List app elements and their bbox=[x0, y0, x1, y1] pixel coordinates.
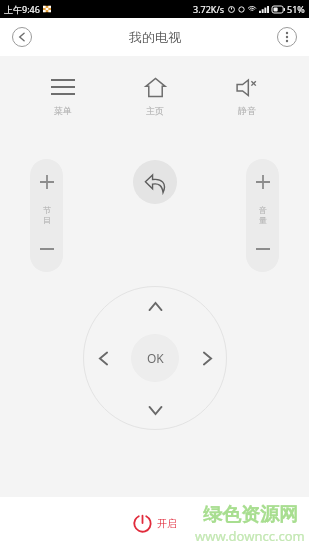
staticText: 量 bbox=[259, 215, 267, 225]
button[interactable]: Right bbox=[187, 338, 227, 378]
staticText: 音 bbox=[259, 205, 267, 215]
button[interactable]: Increase bbox=[246, 159, 279, 205]
button[interactable]: Increase bbox=[30, 159, 63, 205]
button[interactable]: Left bbox=[83, 338, 123, 378]
button[interactable]: Down bbox=[135, 390, 175, 430]
button[interactable]: 主页 bbox=[109, 70, 201, 120]
staticText: 51% bbox=[287, 3, 305, 15]
button[interactable]: Decrease bbox=[246, 225, 279, 272]
button[interactable]: 静音 bbox=[201, 70, 293, 120]
staticText: 绿色资源网 bbox=[203, 503, 298, 527]
staticText: 我的电视 bbox=[129, 29, 181, 45]
staticText: 开启 bbox=[157, 517, 177, 530]
staticText: 节 bbox=[43, 205, 51, 215]
button[interactable]: OK bbox=[131, 334, 179, 382]
staticText: 主页 bbox=[146, 105, 164, 116]
staticText: OK bbox=[147, 350, 164, 366]
button[interactable]: Back bbox=[8, 23, 36, 51]
button[interactable]: Decrease bbox=[30, 225, 63, 272]
staticText: 静音 bbox=[238, 105, 256, 116]
staticText: 3.72K/s bbox=[193, 3, 225, 15]
button[interactable]: More options bbox=[273, 23, 301, 51]
button[interactable]: Back bbox=[133, 160, 177, 204]
staticText: 上午9:46 bbox=[4, 3, 40, 15]
button[interactable]: 菜单 bbox=[16, 70, 109, 120]
button[interactable]: Up bbox=[135, 286, 175, 326]
staticText: 目 bbox=[43, 215, 51, 225]
staticText: 菜单 bbox=[54, 105, 72, 116]
staticText: www.downcc.com bbox=[195, 527, 305, 545]
button[interactable]: 开启 bbox=[133, 514, 177, 533]
